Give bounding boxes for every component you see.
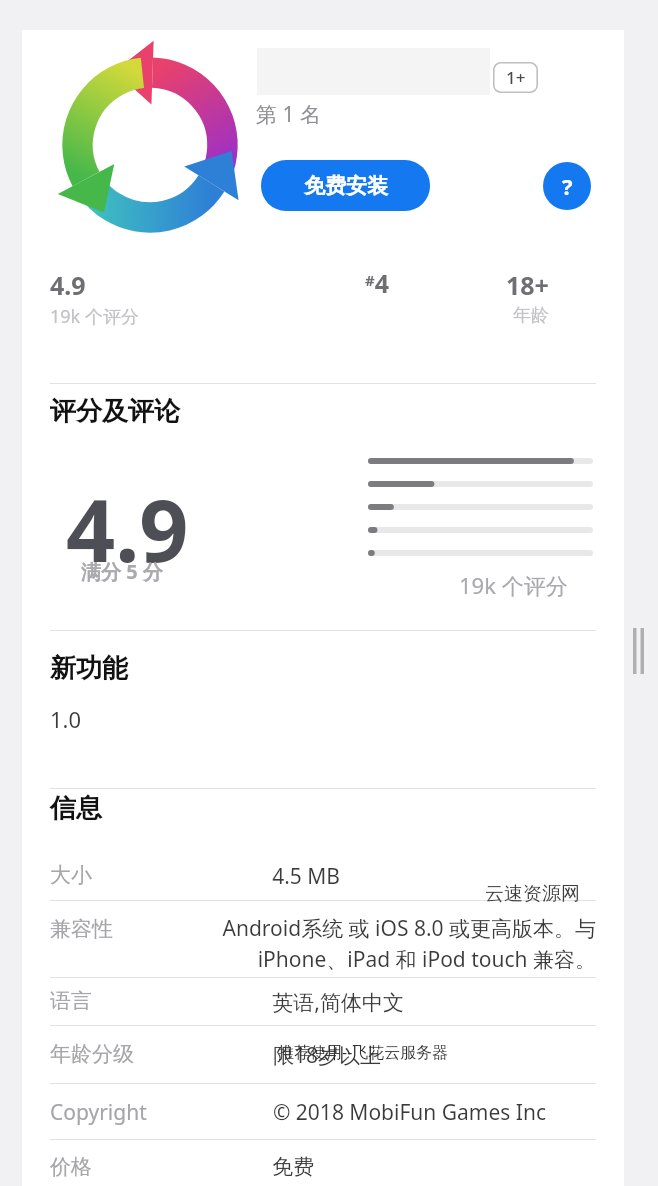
staticText: 云速资源网 [485, 882, 580, 906]
staticText: 免费 [272, 1154, 314, 1180]
staticText: 兼容性 [50, 916, 113, 942]
staticText: 限18岁以上 [272, 1041, 381, 1070]
staticText: 1.0 [50, 704, 82, 734]
staticText: 4.5 MB [272, 862, 340, 891]
staticText: 英语,简体中文 [272, 988, 404, 1017]
staticText: 评分及评论 [50, 395, 180, 428]
staticText: 新功能 [50, 652, 128, 685]
button[interactable]: App icon [45, 40, 255, 250]
staticText: ? [562, 171, 573, 201]
staticText: 年龄 [513, 304, 549, 327]
staticText: 推荐使用--飞花云服务器 [278, 1041, 449, 1063]
staticText: Android系统 或 iOS 8.0 或更高版本。与 iPhone、iPad … [222, 914, 596, 973]
button[interactable]: Help [543, 162, 591, 210]
staticText: © 2018 MobiFun Games Inc [272, 1098, 546, 1127]
staticText: #4 [365, 266, 389, 300]
staticText: 满分 5 分 [81, 558, 163, 585]
staticText: 年龄分级 [50, 1041, 134, 1067]
staticText: 第 1 名 [256, 100, 321, 129]
staticText: 4.9 [50, 268, 86, 302]
staticText: Copyright [50, 1098, 147, 1127]
staticText: 1+ [506, 66, 526, 89]
button[interactable]: 免费安装 [261, 160, 430, 211]
button[interactable]: 1+ [493, 62, 538, 93]
staticText: 信息 [50, 792, 102, 825]
staticText: 18+ [506, 268, 549, 302]
staticText: 免费安装 [304, 173, 388, 199]
staticText: 19k 个评分 [459, 570, 568, 600]
staticText: 4.9 [66, 470, 189, 587]
staticText: 19k 个评分 [50, 304, 139, 329]
staticText: 大小 [50, 862, 92, 888]
staticText: 语言 [50, 988, 92, 1014]
staticText: 价格 [50, 1154, 92, 1180]
